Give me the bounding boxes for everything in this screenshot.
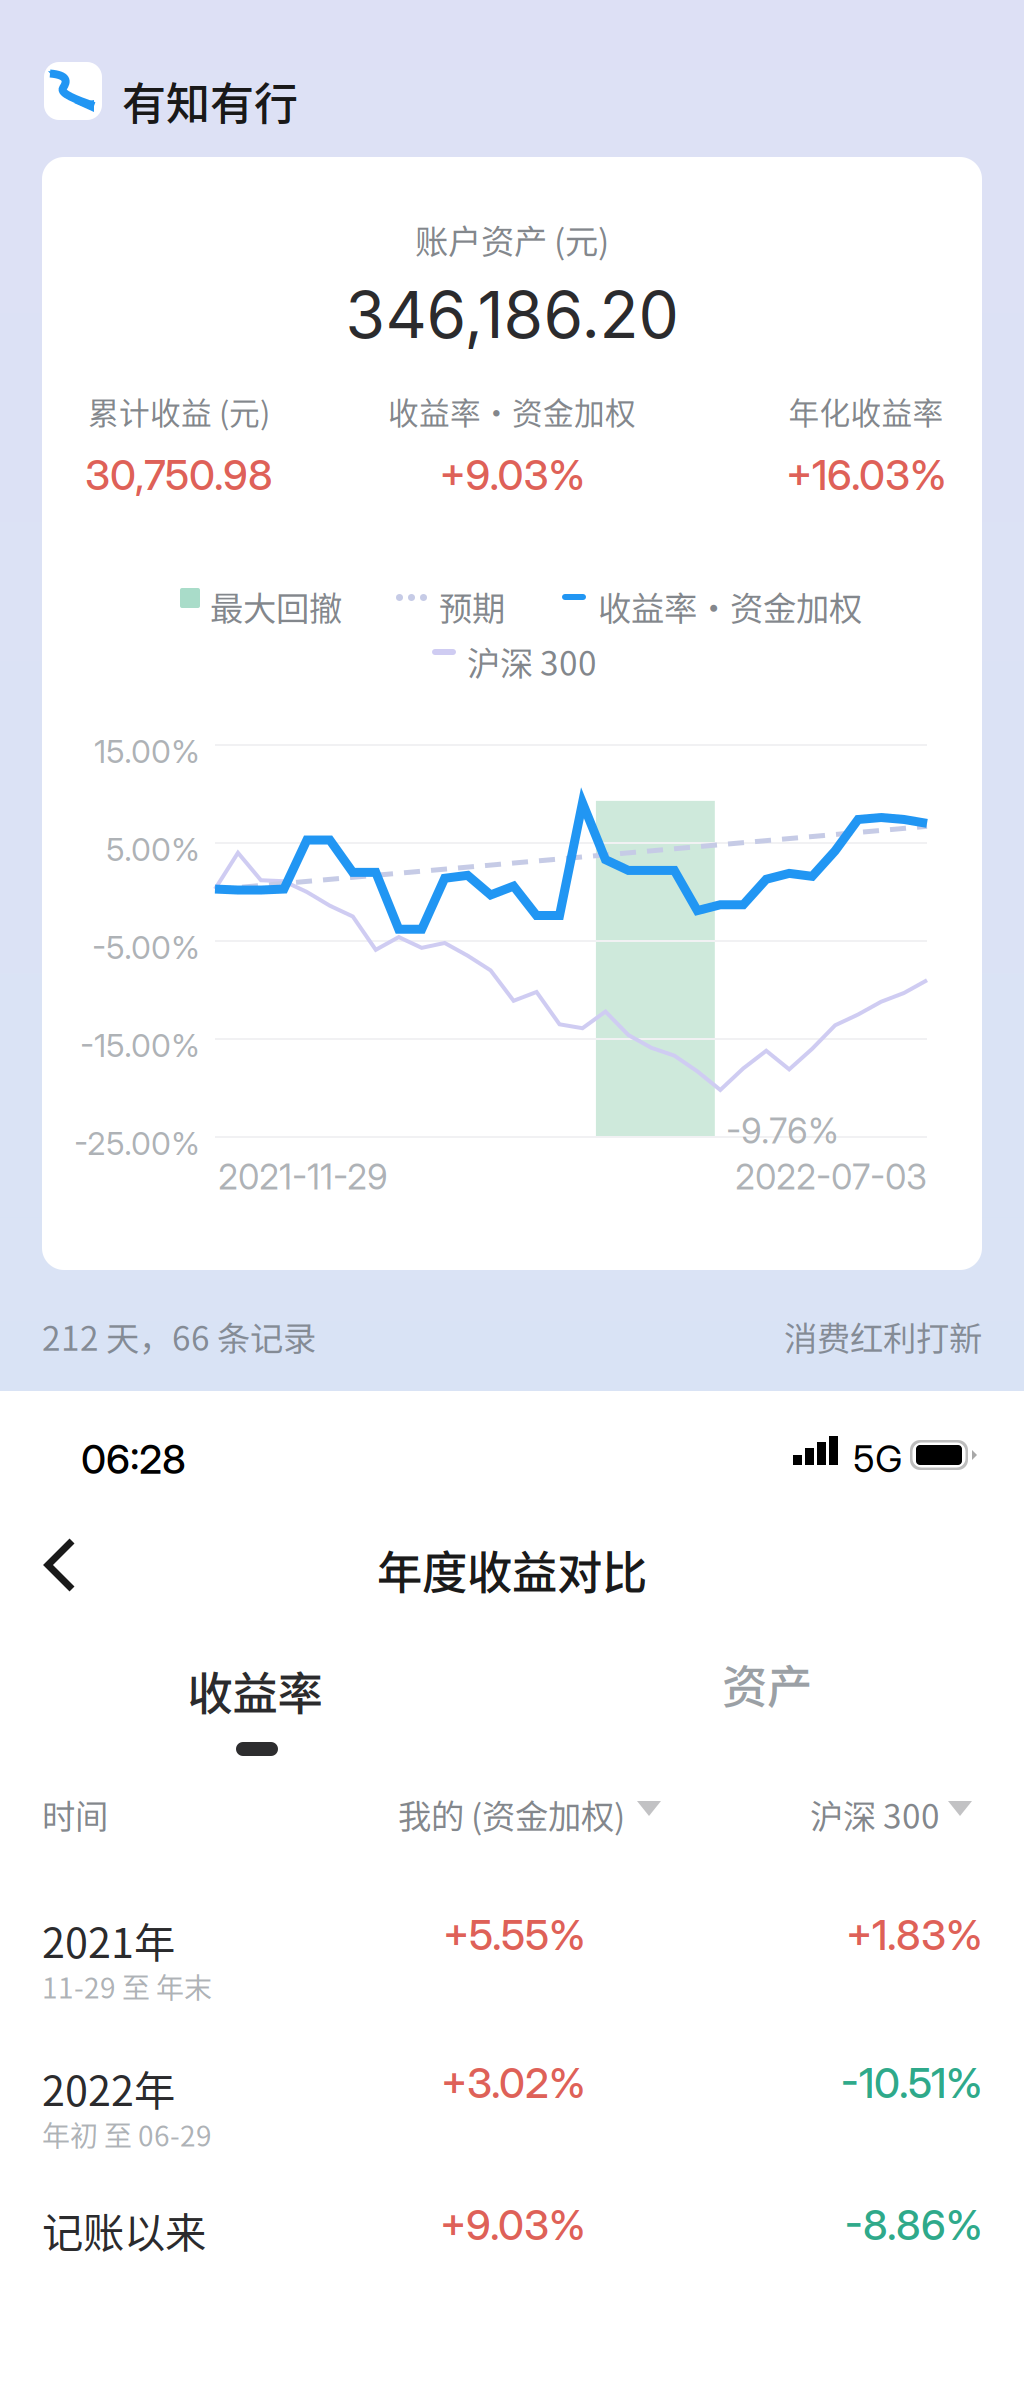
staticText: 收益率·资金加权: [388, 389, 636, 433]
staticText: +3.02%: [441, 2058, 585, 2108]
staticText: 30,750.98: [85, 450, 273, 500]
staticText: 账户资产 (元): [415, 215, 609, 263]
staticText: 346,186.20: [345, 276, 678, 353]
staticText: 累计收益 (元): [88, 389, 270, 433]
button[interactable]: 资产: [672, 1658, 862, 1710]
staticText: -10.51%: [841, 2058, 982, 2108]
staticText: 2021年: [42, 1910, 175, 1970]
staticText: 15.00%: [94, 732, 200, 771]
staticText: 5.00%: [106, 830, 200, 869]
staticText: 资产: [722, 1651, 812, 1717]
staticText: 年度收益对比: [377, 1537, 647, 1603]
staticText: +9.03%: [439, 450, 584, 500]
staticText: -8.86%: [845, 2200, 982, 2250]
staticText: +1.83%: [846, 1910, 982, 1960]
staticText: 2022-07-03: [735, 1156, 927, 1198]
staticText: 212 天，66 条记录: [42, 1312, 316, 1360]
staticText: -9.76%: [726, 1110, 839, 1152]
staticText: 最大回撤: [210, 582, 342, 630]
staticText: 2022年: [42, 2058, 175, 2118]
staticText: 沪深 300: [810, 1790, 940, 1838]
staticText: 我的 (资金加权): [398, 1790, 625, 1838]
staticText: +16.03%: [786, 450, 946, 500]
staticText: -25.00%: [74, 1124, 200, 1163]
staticText: 年化收益率: [788, 389, 943, 433]
staticText: -5.00%: [92, 928, 200, 967]
staticText: 有知有行: [122, 69, 298, 133]
staticText: +9.03%: [440, 2200, 585, 2250]
button[interactable]: 收益率: [160, 1658, 350, 1776]
staticText: +5.55%: [443, 1910, 585, 1960]
button[interactable]: Back: [16, 1514, 104, 1616]
staticText: 收益率·资金加权: [598, 582, 862, 630]
staticText: 年初 至 06-29: [42, 2114, 212, 2154]
staticText: 2021-11-29: [218, 1156, 388, 1198]
staticText: 5G: [853, 1436, 902, 1481]
staticText: 记账以来: [42, 2200, 206, 2260]
staticText: 06:28: [81, 1435, 186, 1483]
staticText: 收益率: [187, 1658, 322, 1724]
staticText: 预期: [439, 582, 505, 630]
staticText: -15.00%: [80, 1026, 200, 1065]
staticText: 沪深 300: [467, 637, 597, 685]
staticText: 消费红利打新: [784, 1312, 982, 1360]
staticText: 时间: [42, 1790, 108, 1838]
staticText: 11-29 至 年末: [42, 1966, 212, 2006]
